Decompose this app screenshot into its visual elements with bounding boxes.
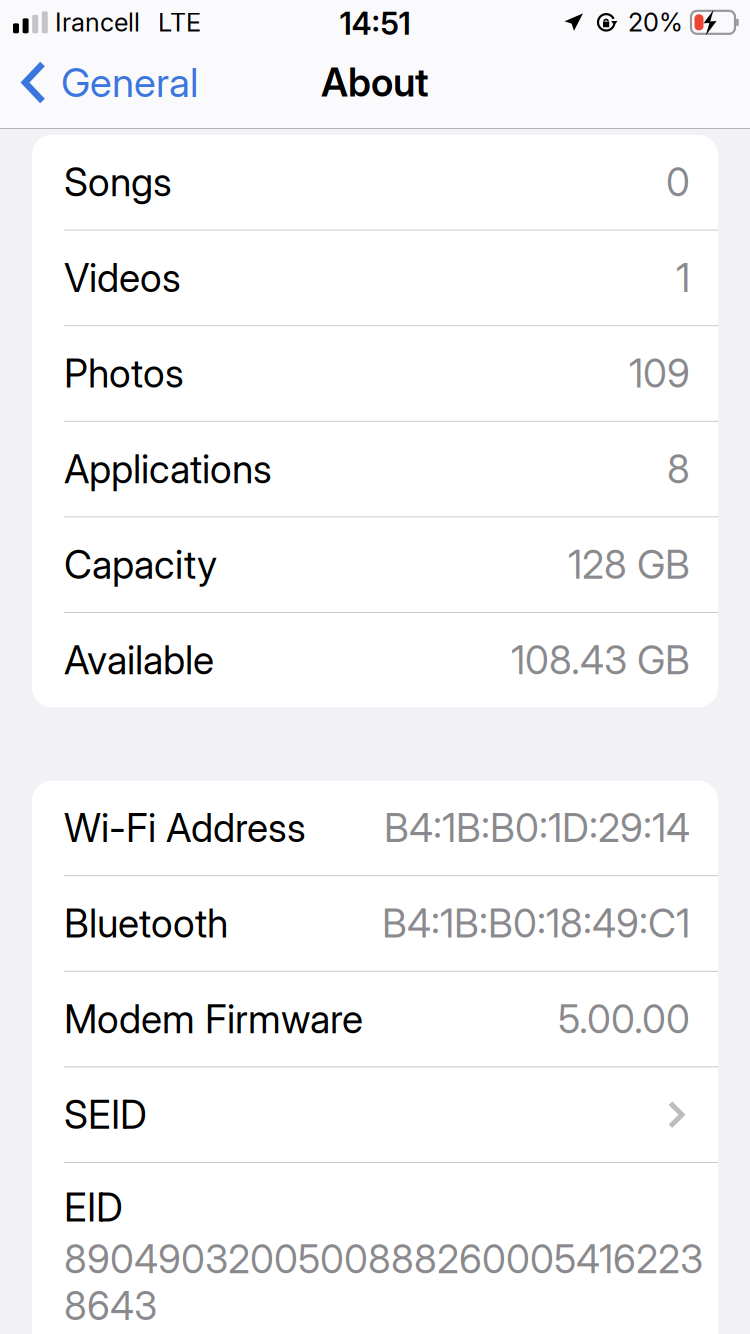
button[interactable]: SEID bbox=[32, 1067, 718, 1162]
staticText: 14:51 bbox=[339, 5, 410, 42]
staticText: Photos bbox=[64, 350, 184, 397]
staticText: Irancell bbox=[55, 7, 140, 38]
staticText: 5.00.00 bbox=[558, 996, 690, 1042]
staticText: Songs bbox=[64, 159, 172, 206]
staticText: 89049032005008882600054162238643 bbox=[64, 1236, 703, 1329]
staticText: 8 bbox=[667, 446, 690, 492]
staticText: 1 bbox=[676, 254, 690, 301]
staticText: B4:1B:B0:1D:29:14 bbox=[384, 804, 690, 851]
staticText: EID bbox=[64, 1184, 123, 1231]
staticText: 128 GB bbox=[568, 541, 690, 588]
staticText: LTE bbox=[158, 7, 201, 38]
staticText: SEID bbox=[64, 1091, 147, 1138]
staticText: Wi-Fi Address bbox=[64, 804, 306, 851]
staticText: 108.43 GB bbox=[511, 637, 690, 684]
staticText: 0 bbox=[666, 159, 690, 206]
staticText: General bbox=[61, 58, 198, 107]
staticText: Bluetooth bbox=[64, 900, 228, 947]
staticText: 20% bbox=[628, 7, 683, 38]
staticText: Applications bbox=[64, 446, 272, 492]
staticText: Capacity bbox=[64, 541, 217, 588]
staticText: Videos bbox=[64, 254, 181, 301]
staticText: About bbox=[321, 59, 429, 106]
button[interactable]: General bbox=[0, 48, 300, 128]
staticText: 109 bbox=[629, 350, 690, 397]
staticText: B4:1B:B0:18:49:C1 bbox=[382, 900, 690, 947]
staticText: Modem Firmware bbox=[64, 996, 363, 1042]
staticText: Available bbox=[64, 637, 214, 684]
